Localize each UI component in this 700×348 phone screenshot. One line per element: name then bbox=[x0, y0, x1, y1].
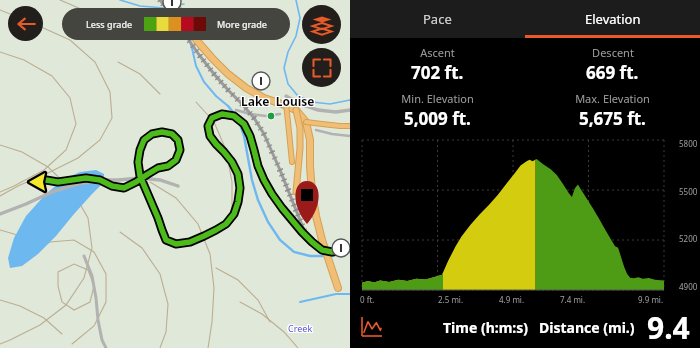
staticText: Distance (mi.) bbox=[539, 318, 635, 337]
button[interactable]: Recenter map bbox=[302, 48, 341, 87]
staticText: Creek bbox=[287, 322, 312, 334]
staticText: Lake Louise bbox=[240, 93, 314, 109]
staticText: Pace bbox=[423, 10, 452, 28]
staticText: Time (h:m:s) bbox=[443, 318, 529, 337]
staticText: Creek bbox=[289, 323, 314, 335]
staticText: 702 ft. bbox=[411, 61, 464, 84]
staticText: 2.5 mi. bbox=[438, 294, 464, 305]
staticText: Creek bbox=[289, 322, 314, 334]
staticText: Ascent bbox=[420, 45, 455, 60]
staticText: More grade bbox=[217, 18, 267, 30]
staticText: Creek bbox=[287, 323, 312, 335]
staticText: 7.4 mi. bbox=[560, 294, 586, 305]
staticText: 0 ft. bbox=[360, 294, 375, 305]
staticText: Max. Elevation bbox=[575, 91, 650, 106]
staticText: Lake Louise bbox=[241, 93, 315, 109]
staticText: 4.9 mi. bbox=[499, 294, 525, 305]
staticText: Lake Louise bbox=[241, 92, 315, 108]
button[interactable]: Pace bbox=[350, 0, 525, 38]
staticText: 5200 bbox=[679, 233, 698, 244]
button[interactable]: Less grade bbox=[62, 8, 290, 40]
staticText: 5800 bbox=[679, 138, 698, 149]
button[interactable]: Elevation bbox=[525, 0, 700, 38]
staticText: Creek bbox=[288, 322, 313, 334]
staticText: 4900 bbox=[679, 281, 698, 292]
staticText: 9.9 mi. bbox=[638, 294, 664, 305]
staticText: 9.4 bbox=[647, 307, 690, 348]
staticText: 5500 bbox=[679, 186, 698, 197]
staticText: Lake Louise bbox=[242, 93, 316, 109]
staticText: Creek bbox=[289, 321, 314, 333]
button[interactable]: Map layers bbox=[302, 5, 341, 44]
staticText: Min. Elevation bbox=[401, 91, 474, 106]
staticText: Less grade bbox=[86, 18, 133, 30]
staticText: 669 ft. bbox=[586, 61, 639, 84]
staticText: Creek bbox=[288, 323, 313, 335]
button[interactable]: Chart type bbox=[360, 315, 384, 339]
staticText: Elevation bbox=[585, 10, 641, 28]
staticText: 5,675 ft. bbox=[579, 107, 646, 130]
staticText: Descent bbox=[592, 45, 634, 60]
staticText: Lake Louise bbox=[240, 92, 314, 108]
staticText: Creek bbox=[287, 321, 312, 333]
staticText: Lake Louise bbox=[242, 92, 316, 108]
staticText: Lake Louise bbox=[241, 94, 315, 110]
staticText: 5,009 ft. bbox=[404, 107, 471, 130]
staticText: Lake Louise bbox=[242, 94, 316, 110]
button[interactable]: Back bbox=[8, 6, 43, 41]
staticText: Lake Louise bbox=[240, 94, 314, 110]
staticText: Creek bbox=[288, 321, 313, 333]
